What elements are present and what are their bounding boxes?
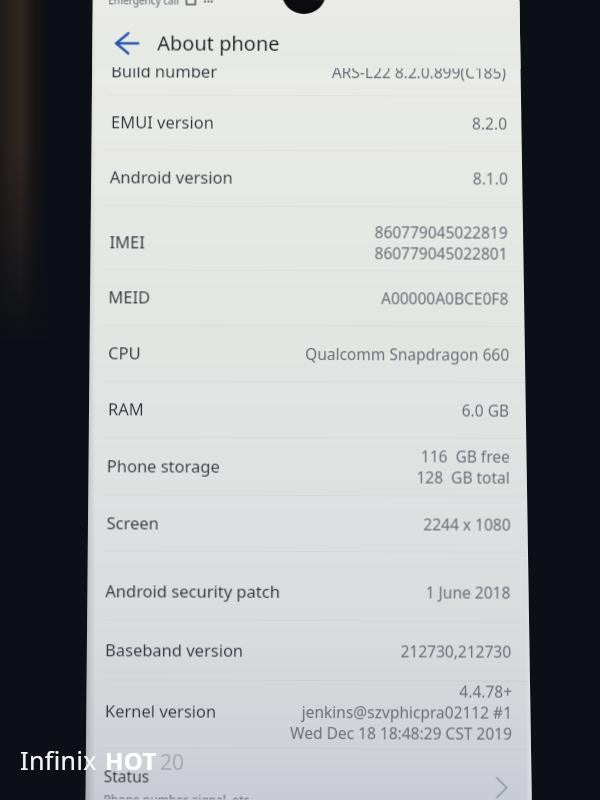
button[interactable]: Screen — [90, 495, 530, 551]
staticText: 212730,212730 — [400, 640, 511, 662]
button[interactable]: MEID — [91, 269, 530, 325]
button[interactable]: Phone storage — [91, 434, 530, 498]
button[interactable]: IMEI — [91, 210, 531, 274]
staticText: MEID — [108, 285, 150, 307]
staticText: Status — [104, 765, 150, 786]
staticText: Emergency call — [108, 0, 179, 7]
staticText: 860779045022819 — [375, 221, 508, 243]
staticText: 128 GB total — [416, 466, 510, 488]
staticText: Phone storage — [107, 454, 220, 477]
staticText: CPU — [108, 341, 141, 363]
staticText: 8.2.0 — [472, 113, 507, 134]
staticText: 4.4.78+ — [459, 680, 512, 702]
button[interactable]: Android version — [92, 149, 531, 205]
staticText: IMEI — [109, 230, 146, 252]
staticText: RAM — [108, 397, 144, 419]
staticText: ARS-L22 8.2.0.899(C185) — [331, 61, 506, 83]
staticText: 2244 x 1080 — [422, 513, 511, 535]
staticText: EMUI version — [111, 110, 214, 133]
staticText: 6.0 GB — [461, 399, 509, 421]
staticText: HOT — [105, 744, 157, 777]
button[interactable]: Kernel version — [90, 672, 529, 750]
staticText: Qualcomm Snapdragon 660 — [305, 343, 509, 365]
button[interactable]: CPU — [91, 325, 530, 381]
button[interactable]: RAM — [91, 381, 530, 437]
staticText: 860779045022801 — [374, 242, 508, 264]
staticText: About phone — [157, 29, 280, 57]
button[interactable]: Baseband version — [90, 622, 529, 678]
staticText: Android version — [110, 165, 233, 188]
button[interactable]: Status — [90, 755, 529, 800]
staticText: Screen — [106, 511, 160, 533]
button[interactable]: Build number — [92, 43, 531, 99]
staticText: ••• — [203, 0, 214, 7]
staticText: A00000A0BCE0F8 — [380, 287, 508, 309]
staticText: Kernel version — [105, 699, 217, 722]
staticText: Wed Dec 18 18:48:29 CST 2019 — [290, 722, 512, 744]
staticText: Infinix — [20, 743, 97, 777]
staticText: Baseband version — [105, 638, 244, 661]
staticText: Phone number, signal, etc. — [104, 791, 253, 800]
staticText: Android security patch — [105, 579, 280, 602]
button[interactable]: Back — [106, 21, 148, 63]
staticText: 116 GB free — [421, 445, 510, 467]
staticText: Build number — [111, 59, 217, 82]
staticText: 20 — [160, 748, 185, 777]
button[interactable]: EMUI version — [92, 94, 531, 150]
button[interactable]: Android security patch — [90, 563, 529, 619]
staticText: 1 June 2018 — [425, 581, 510, 603]
staticText: 8.1.0 — [473, 168, 508, 189]
staticText: jenkins@szvphicpra02112 #1 — [301, 701, 512, 723]
